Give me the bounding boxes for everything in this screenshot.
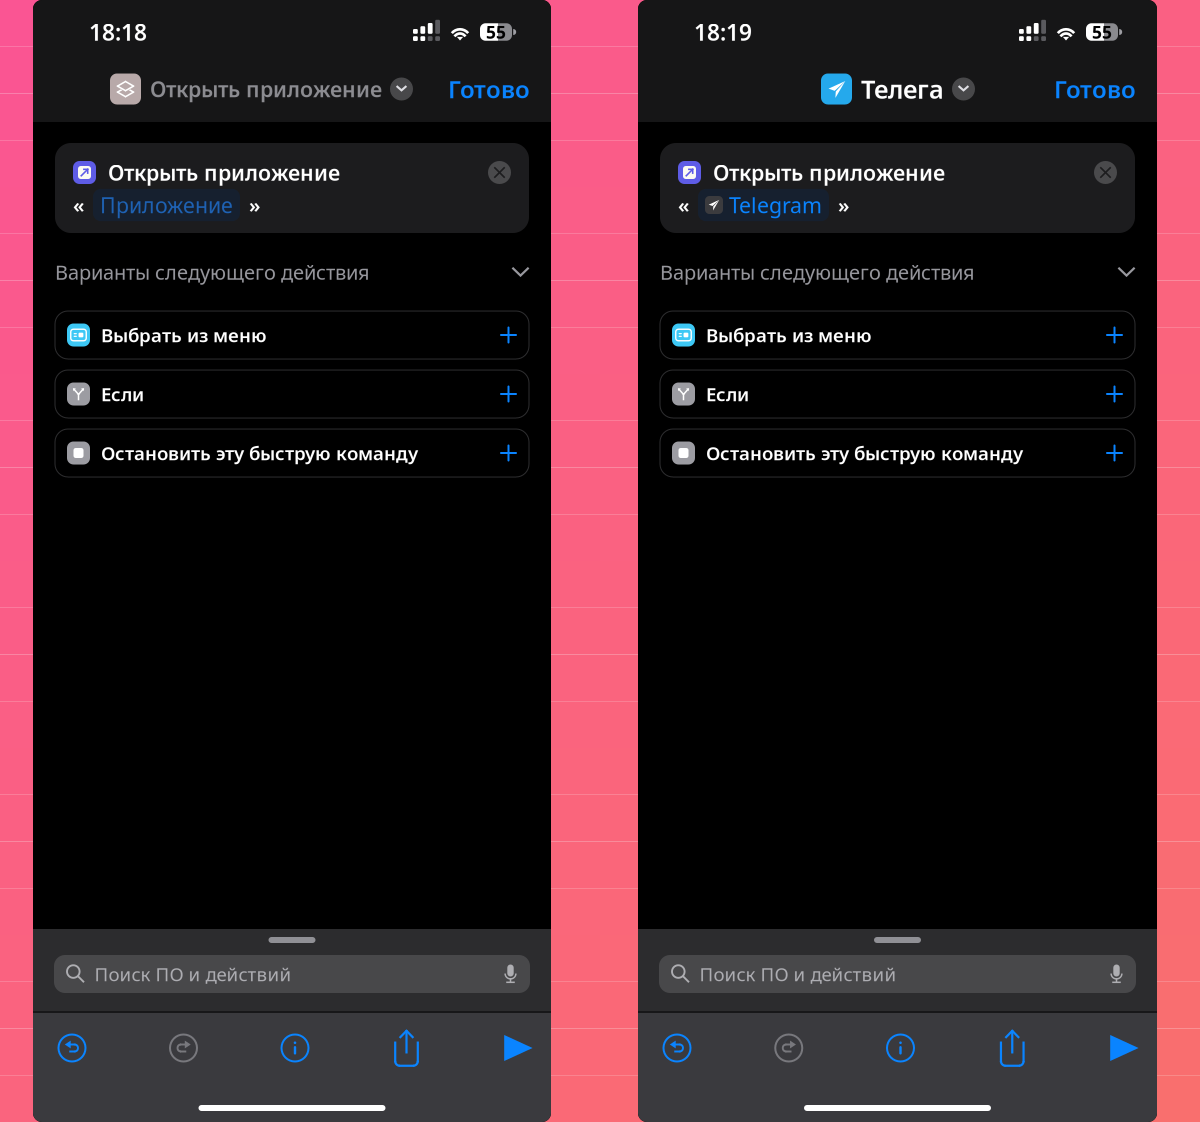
staticText: 18:18 — [89, 17, 147, 47]
button[interactable]: Готово — [1054, 73, 1136, 105]
staticText: Если — [706, 382, 749, 406]
button[interactable]: Остановить эту быструю команду — [660, 429, 1135, 477]
button[interactable]: Run — [490, 1020, 546, 1076]
button[interactable]: Details — [267, 1020, 323, 1076]
staticText: » — [249, 192, 260, 218]
staticText: Выбрать из меню — [101, 323, 267, 347]
staticText: « — [73, 192, 84, 218]
button[interactable]: Если — [660, 370, 1135, 418]
button[interactable]: Redo — [155, 1020, 211, 1076]
staticText: Варианты следующего действия — [660, 259, 975, 285]
staticText: Открыть приложение — [150, 75, 382, 103]
button[interactable]: Выбрать из меню — [660, 311, 1135, 359]
staticText: Остановить эту быструю команду — [101, 441, 418, 465]
button[interactable]: Если — [55, 370, 529, 418]
staticText: 55 — [1092, 20, 1112, 43]
staticText: » — [838, 192, 849, 218]
button[interactable]: Share — [378, 1020, 434, 1076]
staticText: « — [678, 192, 689, 218]
staticText: Выбрать из меню — [706, 323, 872, 347]
staticText: Варианты следующего действия — [55, 259, 370, 285]
button[interactable]: Share — [984, 1020, 1040, 1076]
staticText: Остановить эту быструю команду — [706, 441, 1023, 465]
button[interactable]: Details — [872, 1020, 928, 1076]
staticText: Если — [101, 382, 144, 406]
staticText: Telegram — [729, 191, 822, 219]
staticText: Открыть приложение — [713, 158, 945, 187]
button[interactable]: Открыть приложение — [660, 143, 1135, 233]
button[interactable]: Остановить эту быструю команду — [55, 429, 529, 477]
staticText: Готово — [1054, 73, 1136, 105]
button[interactable]: Undo — [44, 1020, 100, 1076]
staticText: 55 — [486, 20, 506, 43]
staticText: 18:19 — [694, 17, 752, 47]
staticText: Готово — [448, 73, 530, 105]
staticText: Поиск ПО и действий — [94, 962, 291, 986]
button[interactable]: Варианты следующего действия — [33, 233, 551, 311]
button[interactable]: Undo — [649, 1020, 705, 1076]
button[interactable]: Redo — [761, 1020, 817, 1076]
button[interactable]: Run — [1096, 1020, 1152, 1076]
staticText: Приложение — [100, 191, 233, 219]
button[interactable]: Готово — [448, 73, 530, 105]
staticText: Открыть приложение — [108, 158, 340, 187]
staticText: Поиск ПО и действий — [699, 962, 896, 986]
button[interactable]: Открыть приложение — [55, 143, 529, 233]
button[interactable]: Варианты следующего действия — [638, 233, 1157, 311]
button[interactable]: Выбрать из меню — [55, 311, 529, 359]
staticText: Телега — [861, 72, 944, 106]
